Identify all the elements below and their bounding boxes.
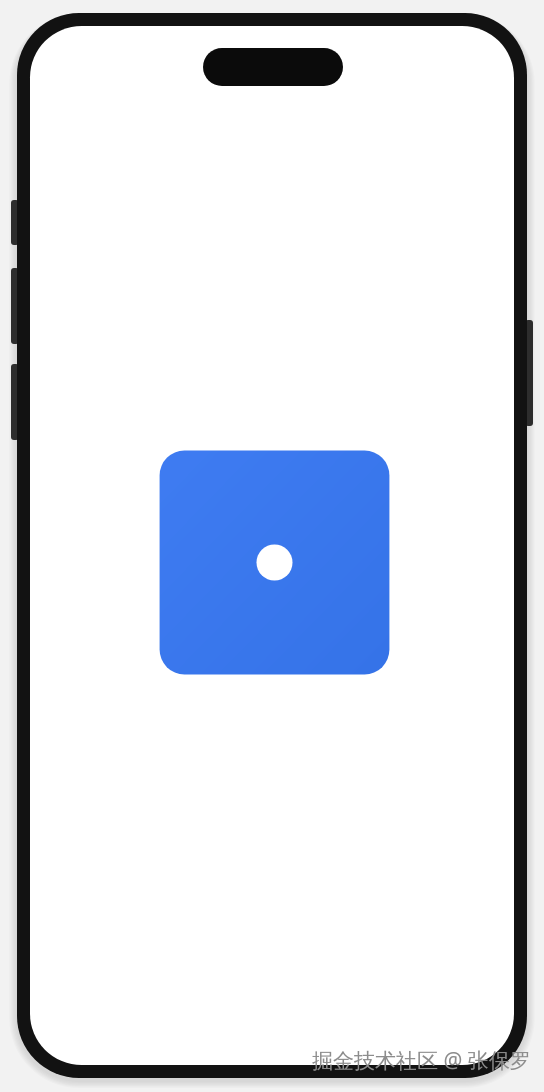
button[interactable]: Blue card with centre dot xyxy=(152,443,397,682)
staticText: 掘金技术社区 @ 张保罗 xyxy=(312,1046,531,1075)
